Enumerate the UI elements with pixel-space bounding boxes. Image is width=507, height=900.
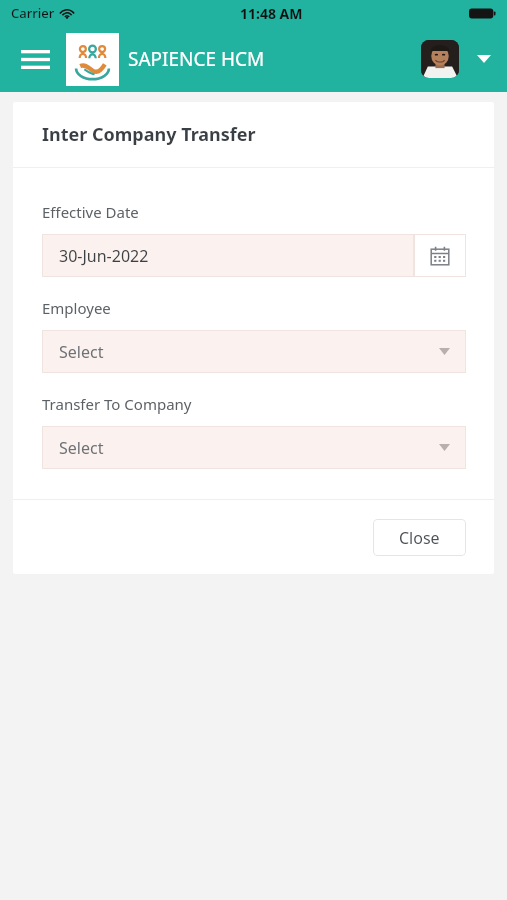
- button[interactable]: Close: [373, 519, 466, 556]
- staticText: Select: [59, 341, 104, 363]
- staticText: SAPIENCE HCM: [128, 46, 265, 72]
- staticText: 11:48 AM: [240, 4, 303, 23]
- staticText: 30-Jun-2022: [59, 245, 149, 267]
- button[interactable]: Select: [42, 426, 466, 469]
- staticText: Employee: [42, 298, 111, 318]
- button[interactable]: Open navigation menu: [12, 36, 58, 82]
- staticText: Transfer To Company: [42, 394, 192, 414]
- staticText: Inter Company Transfer: [42, 122, 256, 147]
- staticText: Effective Date: [42, 202, 139, 222]
- button[interactable]: Profile: [421, 40, 459, 78]
- staticText: Close: [399, 527, 440, 549]
- button[interactable]: Account menu: [469, 44, 499, 74]
- staticText: Carrier: [11, 4, 55, 22]
- button[interactable]: Pick date: [414, 234, 466, 277]
- staticText: Select: [59, 437, 104, 459]
- button[interactable]: Select: [42, 330, 466, 373]
- button[interactable]: 30-Jun-2022: [42, 234, 466, 277]
